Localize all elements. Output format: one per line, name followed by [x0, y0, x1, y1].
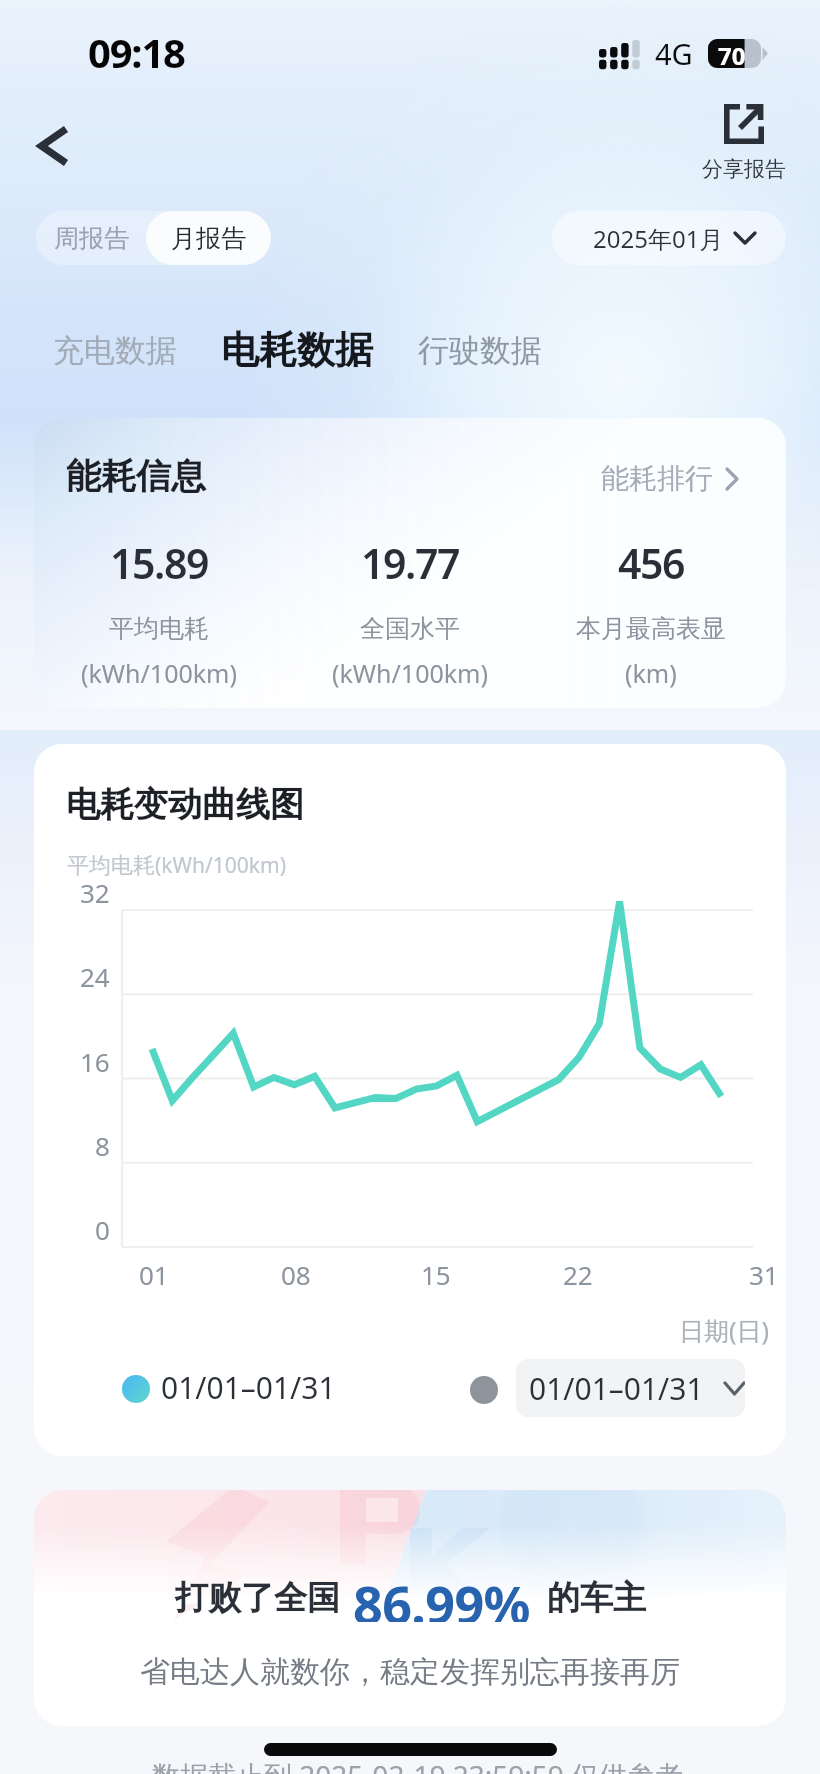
- staticText: 电耗数据: [221, 326, 373, 374]
- staticText: 09:18: [88, 25, 185, 79]
- staticText: (kWh/100km): [81, 656, 237, 690]
- staticText: 24: [80, 959, 110, 994]
- staticText: 电耗变动曲线图: [66, 783, 304, 826]
- button[interactable]: 01/01–01/31: [516, 1359, 745, 1417]
- staticText: (kWh/100km): [332, 656, 488, 690]
- staticText: 4G: [655, 34, 693, 73]
- staticText: 08: [281, 1257, 311, 1292]
- staticText: 01/01–01/31: [161, 1367, 336, 1407]
- button[interactable]: 能耗信息: [34, 418, 786, 708]
- button[interactable]: 能耗排行: [601, 461, 739, 496]
- staticText: 32: [80, 875, 110, 910]
- button[interactable]: Back: [22, 110, 94, 182]
- button[interactable]: 行驶数据: [397, 316, 562, 384]
- staticText: 01: [139, 1257, 169, 1292]
- staticText: 22: [563, 1257, 593, 1292]
- staticText: 行驶数据: [418, 331, 542, 370]
- button[interactable]: 周报告: [36, 211, 146, 265]
- staticText: 能耗信息: [66, 454, 206, 498]
- staticText: 31: [749, 1257, 779, 1292]
- button[interactable]: 充电数据: [32, 316, 197, 384]
- button[interactable]: 电耗数据: [200, 312, 393, 388]
- staticText: 的车主: [547, 1577, 646, 1619]
- staticText: 8: [95, 1128, 110, 1163]
- button[interactable]: Share report: [686, 104, 802, 182]
- staticText: 456: [618, 535, 685, 591]
- staticText: 月报告: [171, 223, 246, 254]
- staticText: 2025年01月: [593, 222, 724, 255]
- button[interactable]: 2025年01月: [552, 211, 786, 265]
- staticText: (km): [625, 656, 677, 690]
- staticText: 省电达人就数你，稳定发挥别忘再接再厉: [140, 1653, 680, 1691]
- staticText: 平均电耗(kWh/100km): [67, 851, 287, 880]
- staticText: 0: [95, 1212, 110, 1247]
- button[interactable]: 月报告: [146, 211, 271, 265]
- staticText: 19.77: [361, 535, 460, 591]
- staticText: 01/01–01/31: [529, 1368, 704, 1409]
- staticText: 全国水平: [360, 613, 460, 644]
- staticText: 数据截止到 2025-02-19 23:59:59 仅供参考: [152, 1756, 684, 1774]
- staticText: 15: [421, 1257, 451, 1292]
- staticText: 15.89: [110, 535, 209, 591]
- staticText: 分享报告: [702, 156, 786, 182]
- staticText: 70: [718, 39, 746, 68]
- staticText: 日期(日): [679, 1313, 770, 1347]
- staticText: 平均电耗: [109, 613, 209, 644]
- staticText: 充电数据: [53, 331, 177, 370]
- staticText: 16: [80, 1044, 110, 1079]
- staticText: 周报告: [54, 223, 129, 254]
- staticText: 能耗排行: [601, 461, 713, 496]
- staticText: 86.99%: [353, 1568, 530, 1622]
- staticText: 本月最高表显: [576, 613, 726, 644]
- staticText: 打败了全国: [175, 1577, 340, 1619]
